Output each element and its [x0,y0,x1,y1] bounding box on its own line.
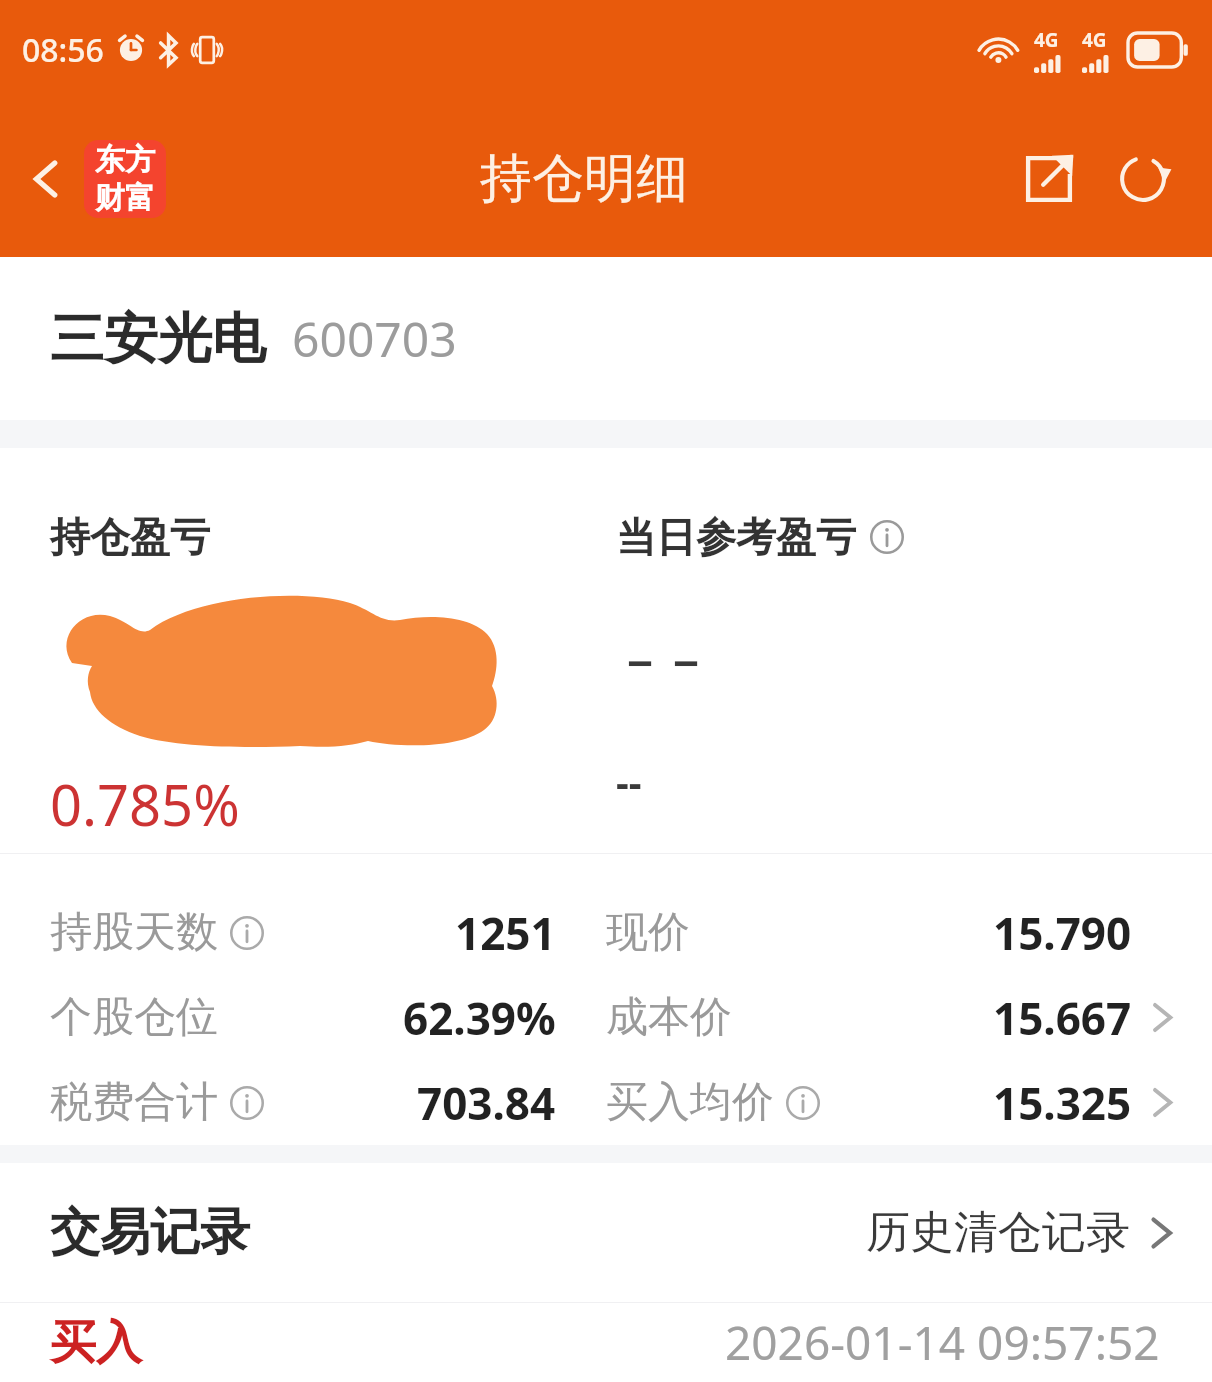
staticText: 4G [1082,27,1107,53]
staticText: 当日参考盈亏 [616,512,856,562]
staticText: 15.325 [993,1073,1132,1133]
staticText: 历史清仓记录 [866,1205,1130,1260]
staticText: 600703 [292,306,457,371]
button[interactable]: 现价 [606,890,1212,975]
button[interactable]: Refresh [1096,132,1190,226]
button[interactable]: 交易记录 [0,1163,1212,1302]
staticText: 买入 [50,1314,142,1372]
staticText: 成本价 [606,991,732,1044]
staticText: 0.785% [50,766,240,842]
staticText: 2026-01-14 09:57:52 [725,1311,1160,1374]
staticText: 08:56 [22,28,104,72]
staticText: 15.790 [993,903,1132,963]
staticText: 4G [1034,27,1059,53]
staticText: 买入均价 [606,1076,774,1129]
staticText: 三安光电 [50,305,266,373]
staticText: 税费合计 [50,1076,218,1129]
button[interactable]: Share [1002,132,1096,226]
staticText: 交易记录 [50,1201,250,1264]
staticText: 持仓明细 [480,146,688,212]
button[interactable]: 税费合计 [0,1060,606,1145]
button[interactable]: 持股天数 [0,890,606,975]
staticText: -- [616,754,642,808]
staticText: 62.39% [403,988,556,1048]
staticText: 东方 [95,141,155,179]
button[interactable]: East Money [84,140,166,218]
staticText: －－ [616,634,708,692]
staticText: 现价 [606,906,690,959]
button[interactable]: 成本价 [606,975,1212,1060]
staticText: 1251 [455,903,556,963]
staticText: 15.667 [993,988,1132,1048]
button[interactable]: 个股仓位 [0,975,606,1060]
staticText: 持仓盈亏 [50,512,210,562]
staticText: 个股仓位 [50,991,218,1044]
staticText: 持股天数 [50,906,218,959]
button[interactable]: 买入均价 [606,1060,1212,1145]
button[interactable]: Back [14,147,78,211]
staticText: 703.84 [417,1073,556,1133]
button[interactable]: 买入 [0,1303,1212,1382]
staticText: 财富 [95,179,155,217]
